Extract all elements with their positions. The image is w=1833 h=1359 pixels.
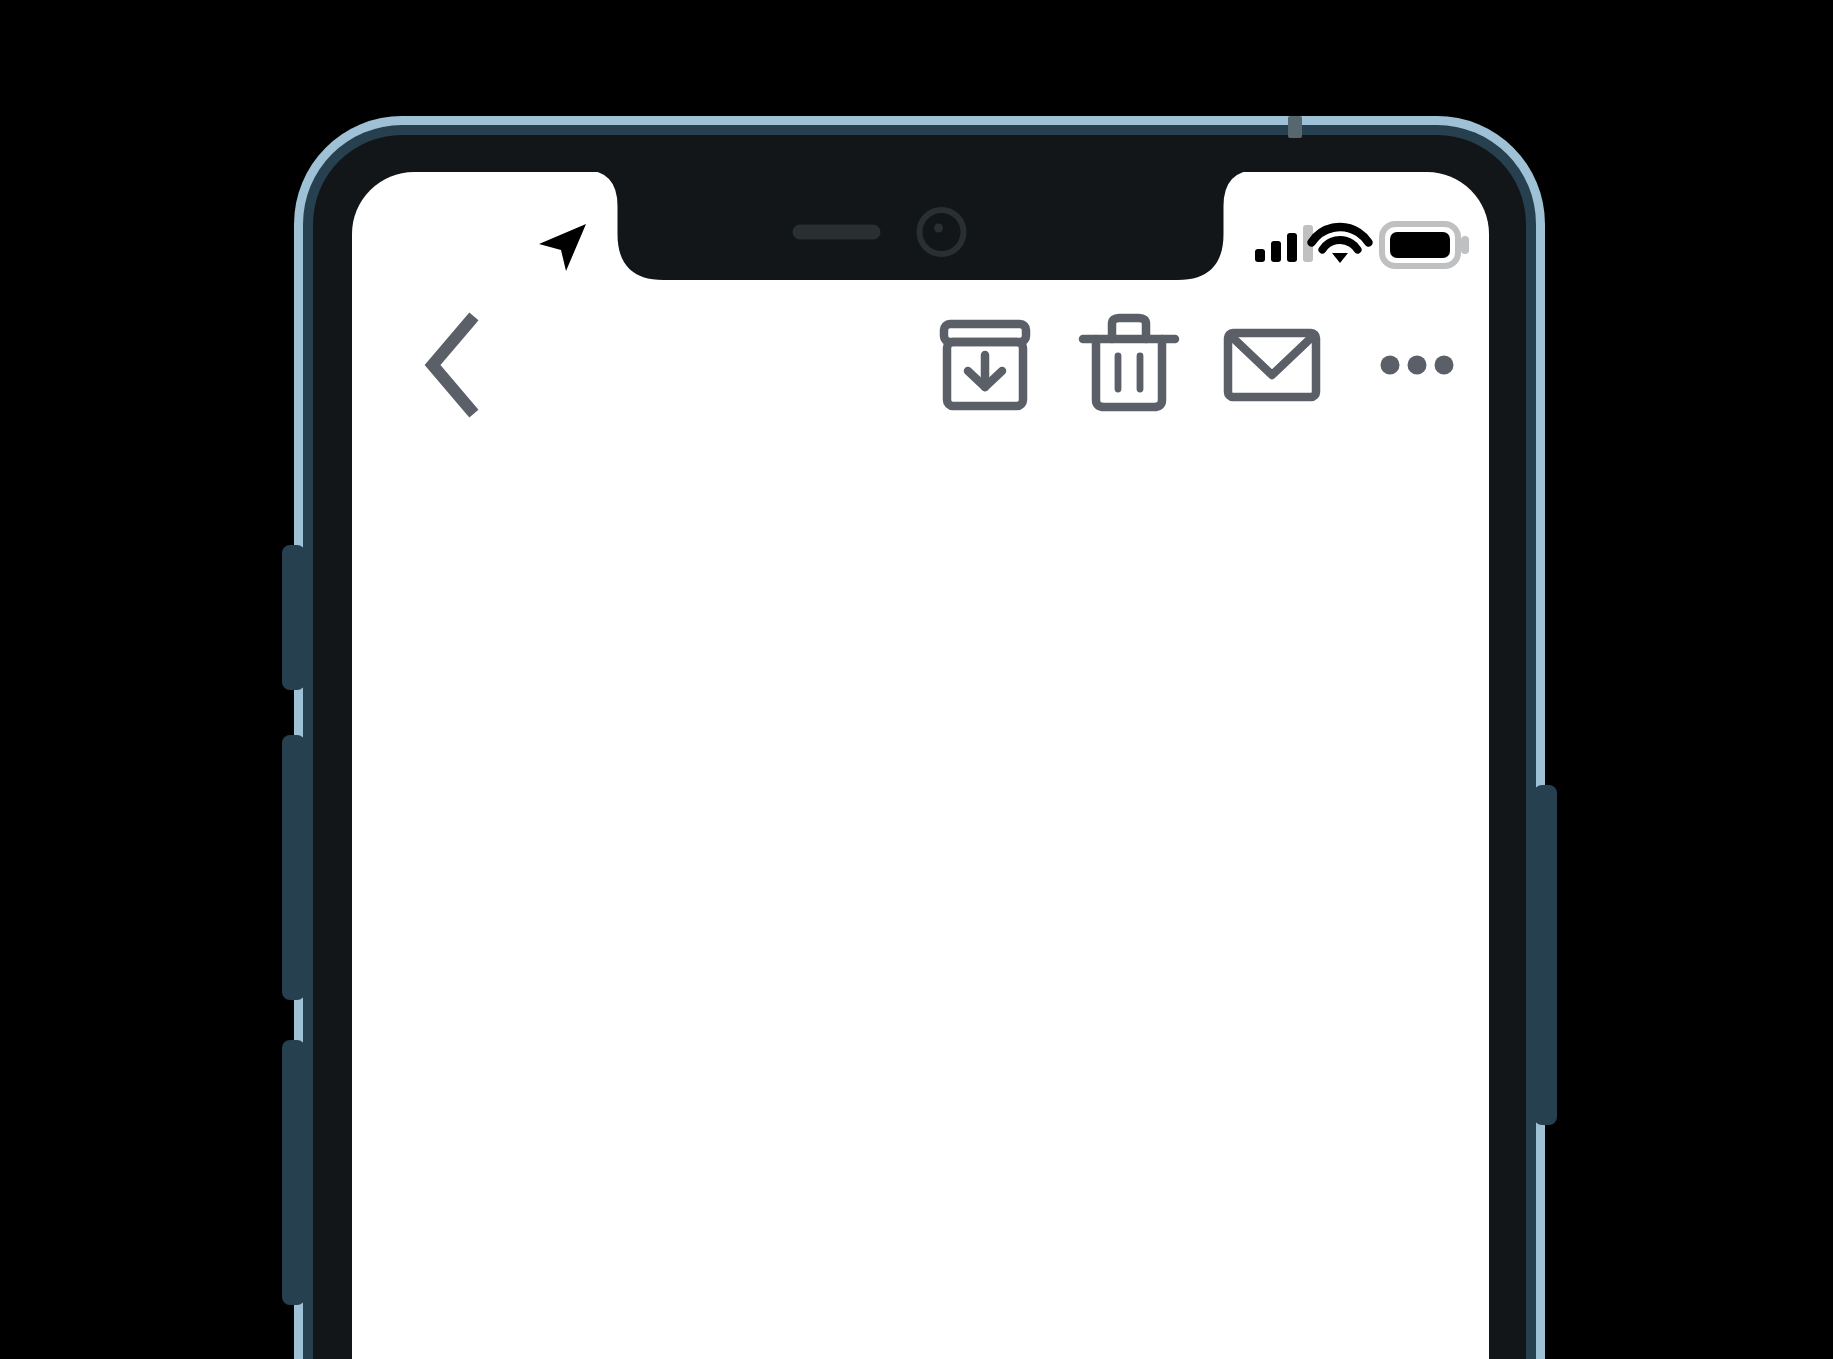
button[interactable]: Mark as unread: [408, 106, 440, 138]
button[interactable]: Delete: [361, 106, 393, 138]
button[interactable]: Archive: [313, 106, 345, 138]
button[interactable]: More options: [457, 106, 489, 138]
